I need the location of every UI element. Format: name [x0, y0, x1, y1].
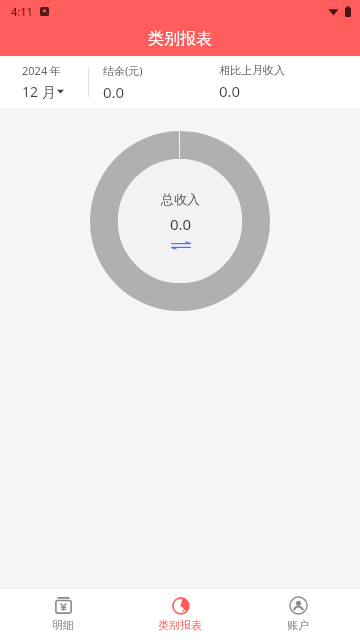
staticText: 相比上月收入 — [219, 63, 285, 77]
staticText: 4:11 — [11, 4, 33, 19]
other: Switch income expense — [170, 240, 192, 251]
staticText: 0.0 — [219, 81, 241, 101]
button[interactable]: 总收入 — [90, 131, 270, 311]
staticText: 12 月 — [22, 82, 56, 101]
staticText: 总收入 — [161, 191, 200, 207]
staticText: 0.0 — [170, 214, 192, 234]
staticText: 明细 — [52, 618, 74, 632]
button[interactable]: 类别报表 — [125, 588, 235, 640]
staticText: 类别报表 — [148, 29, 212, 49]
staticText: 结余(元) — [103, 63, 143, 78]
staticText: 账户 — [287, 618, 309, 632]
other: Select month — [57, 89, 64, 94]
staticText: 类别报表 — [158, 618, 202, 632]
staticText: 2024 年 — [22, 63, 62, 78]
button[interactable]: 明细 — [8, 588, 118, 640]
staticText: 0.0 — [103, 82, 125, 102]
button[interactable]: 账户 — [243, 588, 353, 640]
button[interactable]: 2024 年 — [0, 56, 88, 108]
